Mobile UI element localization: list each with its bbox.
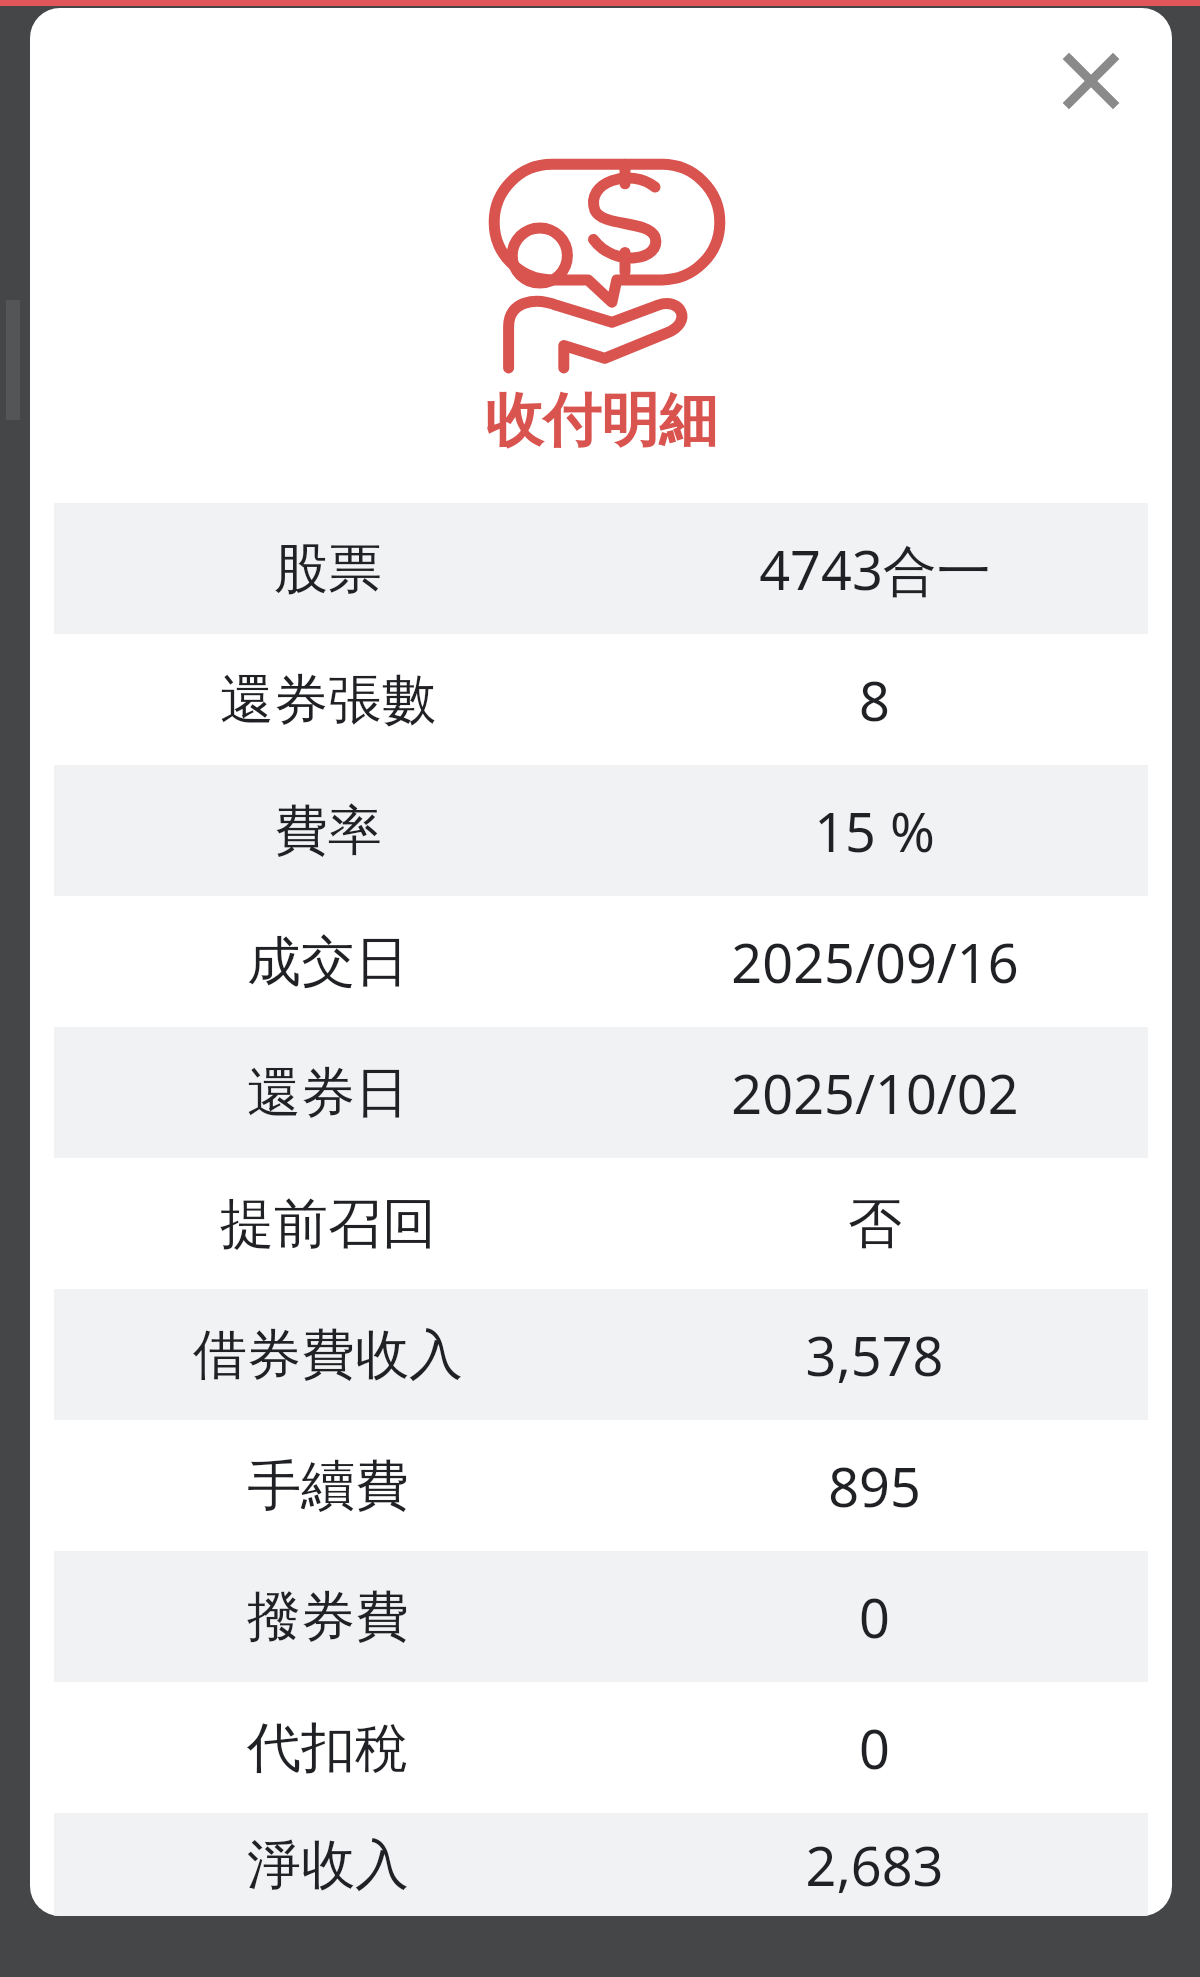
staticText: 收付明細 — [485, 384, 717, 457]
staticText: 還券日 — [247, 1059, 409, 1127]
button[interactable]: 還券張數 — [54, 634, 1148, 765]
staticText: 借券費收入 — [193, 1321, 463, 1389]
staticText: 撥券費 — [247, 1583, 409, 1651]
button[interactable]: 成交日 — [54, 896, 1148, 1027]
staticText: 895 — [828, 1449, 921, 1523]
staticText: 淨收入 — [247, 1831, 409, 1899]
staticText: 15 % — [814, 794, 935, 868]
staticText: 2025/10/02 — [731, 1056, 1019, 1130]
staticText: 費率 — [274, 797, 382, 865]
button[interactable]: 還券日 — [54, 1027, 1148, 1158]
staticText: 還券張數 — [220, 666, 436, 734]
staticText: 2025/09/16 — [731, 925, 1019, 999]
staticText: 否 — [848, 1190, 902, 1258]
staticText: 3,578 — [805, 1318, 944, 1392]
button[interactable]: 淨收入 — [54, 1813, 1148, 1916]
button[interactable]: 代扣稅 — [54, 1682, 1148, 1813]
button[interactable]: 撥券費 — [54, 1551, 1148, 1682]
button[interactable]: 費率 — [54, 765, 1148, 896]
staticText: 提前召回 — [220, 1190, 436, 1258]
staticText: 手續費 — [247, 1452, 409, 1520]
staticText: 成交日 — [247, 928, 409, 996]
button[interactable]: Close — [1052, 42, 1130, 120]
button[interactable]: 手續費 — [54, 1420, 1148, 1551]
staticText: 代扣稅 — [247, 1714, 409, 1782]
button[interactable]: 提前召回 — [54, 1158, 1148, 1289]
staticText: 股票 — [274, 535, 382, 603]
staticText: 4743合一 — [759, 532, 991, 606]
staticText: 8 — [859, 663, 890, 737]
button[interactable]: 借券費收入 — [54, 1289, 1148, 1420]
staticText: 2,683 — [805, 1828, 944, 1902]
button[interactable]: 股票 — [54, 503, 1148, 634]
staticText: 0 — [859, 1580, 890, 1654]
staticText: 0 — [859, 1711, 890, 1785]
